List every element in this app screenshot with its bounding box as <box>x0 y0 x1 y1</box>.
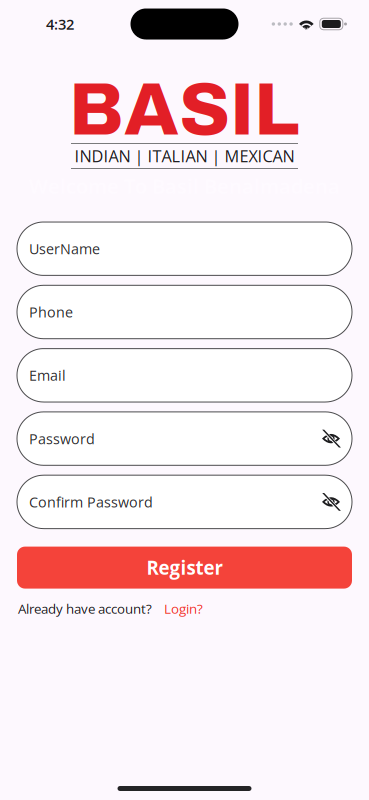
staticText: Confirm Password <box>29 492 153 512</box>
staticText: Register <box>146 555 222 580</box>
staticText: Phone <box>29 302 73 322</box>
staticText: Password <box>29 429 95 448</box>
staticText: UserName <box>29 239 100 258</box>
button[interactable]: Register <box>17 547 352 589</box>
staticText: Email <box>29 365 66 385</box>
staticText: Login? <box>164 600 203 618</box>
button[interactable]: Login? <box>152 600 203 618</box>
button[interactable]: Show Password <box>322 431 340 447</box>
button[interactable]: Show Confirm Password <box>322 494 340 510</box>
staticText: Already have account? <box>18 600 152 618</box>
staticText: INDIAN | ITALIAN | MEXICAN <box>74 145 294 167</box>
staticText: BASIL <box>69 70 300 150</box>
staticText: 4:32 <box>46 14 74 34</box>
